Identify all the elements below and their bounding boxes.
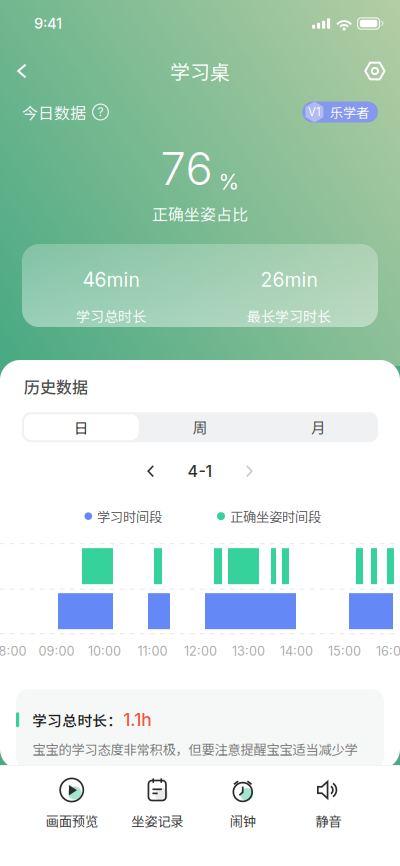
staticText: 宝宝的学习态度非常积极，但要注意提醒宝宝适当减少学 (32, 739, 357, 759)
staticText: 最长学习时长 (247, 305, 331, 326)
staticText: 26min (260, 268, 317, 291)
staticText: 静音 (315, 811, 341, 830)
button[interactable]: 今日数据 (22, 100, 109, 124)
staticText: V1 (308, 105, 321, 119)
staticText: 12:00 (184, 643, 217, 659)
staticText: 学习总时长 (76, 305, 146, 326)
staticText: 学习时间段 (97, 506, 162, 526)
button[interactable]: V1 (302, 101, 378, 122)
staticText: 09:00 (38, 643, 74, 659)
button[interactable]: 画面预览 (29, 765, 114, 846)
staticText: 16:00 (376, 643, 400, 659)
staticText: 正确坐姿占比 (152, 202, 248, 225)
button[interactable]: Back (10, 53, 34, 89)
staticText: % (218, 169, 239, 195)
staticText: 画面预览 (46, 811, 98, 830)
staticText: 学习总时长： (32, 709, 122, 730)
staticText: 11:00 (137, 643, 167, 659)
staticText: 闹钟 (230, 811, 256, 830)
staticText: 学习桌 (170, 56, 230, 85)
staticText: 76 (160, 141, 212, 196)
staticText: 周 (192, 416, 207, 438)
staticText: ? (97, 105, 103, 119)
staticText: 1.1h (123, 709, 151, 730)
staticText: 历史数据 (24, 375, 88, 398)
staticText: 今日数据 (22, 100, 86, 124)
staticText: 46min (82, 268, 139, 291)
button[interactable]: 静音 (285, 765, 371, 846)
button[interactable]: 周 (141, 412, 259, 442)
button[interactable]: Previous day (133, 459, 169, 483)
button[interactable]: 坐姿记录 (114, 765, 200, 846)
staticText: 4-1 (187, 461, 212, 481)
button[interactable]: 月 (259, 412, 378, 442)
staticText: 月 (311, 416, 326, 438)
button[interactable]: 日 (22, 412, 141, 442)
staticText: 9:41 (34, 15, 62, 32)
staticText: 日 (74, 416, 89, 438)
button[interactable]: Settings (360, 53, 390, 89)
staticText: 乐学者 (330, 102, 369, 122)
staticText: 坐姿记录 (131, 811, 183, 830)
button[interactable]: 闹钟 (200, 765, 285, 846)
staticText: 08:00 (0, 643, 26, 659)
staticText: 14:00 (280, 643, 313, 659)
button[interactable]: Next day (231, 459, 267, 483)
staticText: 15:00 (328, 643, 361, 659)
staticText: 正确坐姿时间段 (230, 506, 321, 526)
staticText: 10:00 (88, 643, 121, 659)
staticText: 13:00 (232, 643, 265, 659)
